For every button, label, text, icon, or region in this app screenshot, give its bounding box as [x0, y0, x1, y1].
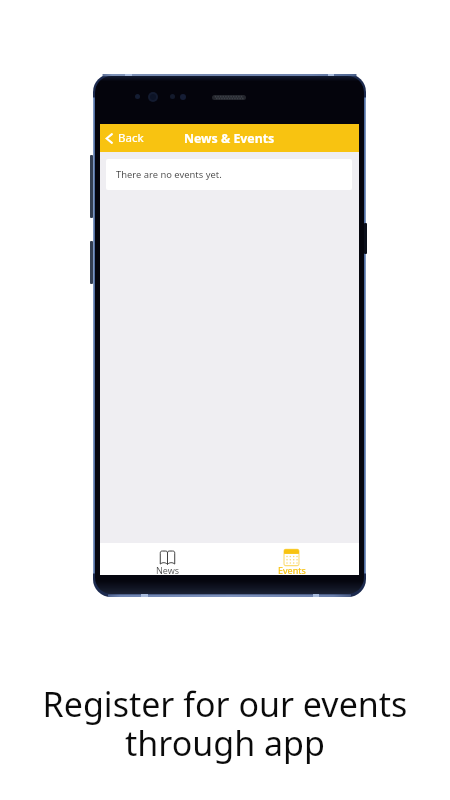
staticText: There are no events yet.: [116, 168, 222, 181]
staticText: News & Events: [184, 130, 275, 147]
other: News: [159, 549, 176, 566]
staticText: Back: [118, 130, 144, 146]
button[interactable]: Back: [100, 124, 152, 152]
staticText: Events: [278, 564, 306, 576]
other: Events: [283, 549, 300, 566]
staticText: News: [156, 564, 180, 576]
button[interactable]: There are no events yet.: [106, 159, 352, 190]
button[interactable]: News: [105, 543, 230, 575]
staticText: Register for our events through app: [0, 681, 450, 766]
button[interactable]: Events: [229, 543, 354, 575]
